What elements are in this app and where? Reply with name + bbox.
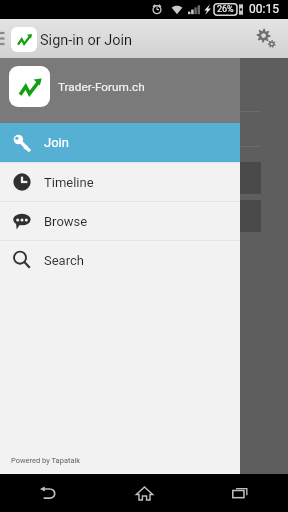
button[interactable]: Back (0, 474, 96, 512)
staticText: 00:15 (249, 2, 279, 16)
button[interactable]: Timeline (0, 163, 240, 201)
button[interactable]: Open navigation drawer (0, 19, 9, 58)
staticText: Sign-in or Join (40, 32, 133, 49)
button[interactable]: Search (0, 241, 240, 279)
button[interactable]: Recent apps (192, 474, 288, 512)
staticText: Timeline (44, 175, 94, 190)
staticText: Search (44, 253, 84, 268)
button[interactable]: Join (0, 123, 240, 162)
staticText: Powered by Tapatalk (11, 456, 81, 465)
staticText: 26% (217, 4, 234, 15)
staticText: Browse (44, 214, 88, 229)
staticText: Trader-Forum.ch (58, 80, 145, 94)
button[interactable]: Browse (0, 202, 240, 240)
staticText: Join (44, 135, 69, 150)
button[interactable]: Home (96, 474, 192, 512)
button[interactable]: Settings (244, 19, 288, 58)
button[interactable]: Trader-Forum.ch (0, 58, 240, 123)
